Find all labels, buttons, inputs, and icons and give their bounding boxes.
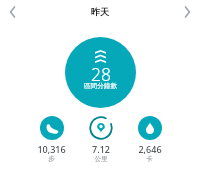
staticText: 步 bbox=[48, 155, 55, 163]
staticText: 28 bbox=[91, 62, 111, 86]
button[interactable]: Calories bbox=[125, 116, 174, 163]
staticText: 卡 bbox=[146, 155, 153, 163]
staticText: 公里 bbox=[94, 155, 108, 163]
button[interactable]: Next day bbox=[174, 0, 200, 25]
staticText: 10,316 bbox=[37, 143, 66, 155]
staticText: 區間分鐘數 bbox=[84, 82, 117, 90]
button[interactable]: Steps bbox=[27, 116, 76, 163]
staticText: 2,646 bbox=[138, 143, 162, 155]
button[interactable]: Previous day bbox=[0, 0, 26, 25]
button[interactable]: Distance bbox=[76, 116, 125, 163]
staticText: 7.12 bbox=[92, 143, 110, 155]
button[interactable]: 28 bbox=[65, 37, 136, 108]
staticText: 昨天 bbox=[91, 6, 109, 17]
